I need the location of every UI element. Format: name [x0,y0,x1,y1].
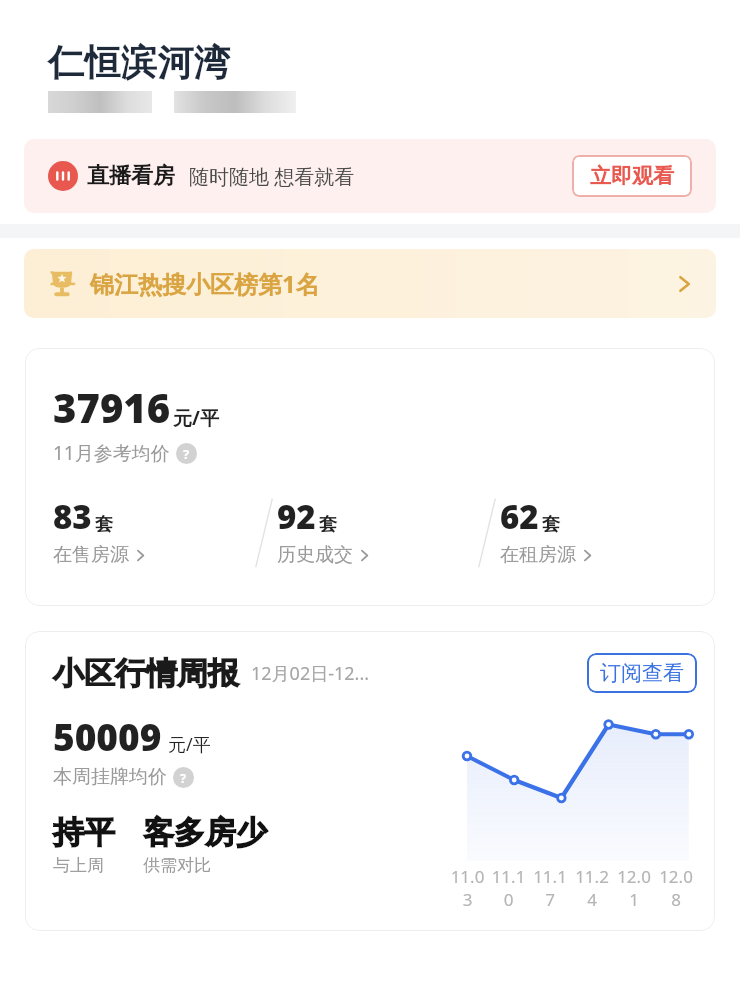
staticText: 11.24 [571,865,613,911]
staticText: 12.01 [613,865,655,911]
staticText: 仁恒滨河湾 [48,40,231,85]
staticText: 12月02日-12... [251,661,370,686]
staticText: 11.10 [488,865,529,911]
button[interactable]: 订阅查看 [587,653,697,693]
staticText: 83 [53,494,92,539]
staticText: 12.08 [655,865,697,911]
staticText: 50009 [53,711,162,761]
staticText: 订阅查看 [600,660,684,686]
staticText: 在售房源 [53,543,129,567]
staticText: 持平 [53,813,115,852]
staticText: 11.17 [529,865,571,911]
staticText: 元/平 [173,405,219,431]
button[interactable]: 83 [53,494,251,567]
staticText: 小区行情周报 [53,654,239,693]
staticText: 37916 [53,380,171,434]
staticText: 直播看房 [87,162,175,190]
staticText: 历史成交 [277,543,353,567]
button[interactable]: 92 [277,494,474,567]
staticText: 11.03 [447,865,488,911]
staticText: 供需对比 [143,855,211,876]
staticText: 客多房少 [143,813,267,852]
staticText: 92 [277,494,316,539]
button[interactable]: 62 [500,494,697,567]
staticText: 套 [95,513,113,536]
button[interactable]: 锦江热搜小区榜第1名 [24,249,716,318]
staticText: 套 [319,513,337,536]
staticText: 11月参考均价 [53,440,170,466]
staticText: 本周挂牌均价 [53,765,167,789]
staticText: 锦江热搜小区榜第1名 [90,267,320,300]
staticText: 元/平 [168,732,211,757]
staticText: 在租房源 [500,543,576,567]
staticText: 与上周 [53,855,104,876]
staticText: ? [183,445,190,463]
staticText: 随时随地 想看就看 [189,163,355,190]
staticText: 立即观看 [590,163,674,189]
button[interactable]: 立即观看 [572,155,692,197]
staticText: 套 [542,513,560,536]
button[interactable]: 直播看房 [24,139,716,213]
staticText: ? [180,769,187,787]
staticText: 62 [500,494,539,539]
